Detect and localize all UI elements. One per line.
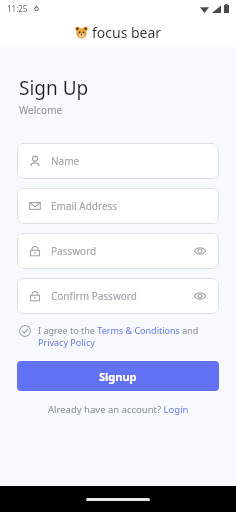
- staticText: Password: [51, 244, 97, 258]
- staticText: Signup: [99, 369, 137, 384]
- staticText: 11:25: [7, 3, 28, 14]
- staticText: Already have an account? Login: [48, 403, 189, 416]
- button[interactable]: Name: [17, 143, 219, 179]
- staticText: Email Address: [51, 199, 118, 213]
- button[interactable]: Confirm Password: [17, 278, 219, 314]
- button[interactable]: Already have an account? Login: [48, 403, 189, 416]
- button[interactable]: Signup: [17, 361, 219, 391]
- staticText: Confirm Password: [51, 289, 137, 303]
- button[interactable]: Agree to terms: [19, 324, 217, 349]
- button[interactable]: Show password: [193, 289, 207, 303]
- other: Agree to terms: [19, 325, 31, 337]
- staticText: Sign Up: [19, 75, 89, 101]
- button[interactable]: Show password: [193, 244, 207, 258]
- staticText: Welcome: [19, 103, 63, 117]
- staticText: focus bear: [92, 23, 162, 42]
- staticText: I agree to the Terms & Conditions and Pr…: [38, 324, 217, 349]
- staticText: Name: [51, 154, 80, 168]
- button[interactable]: Email Address: [17, 188, 219, 224]
- button[interactable]: Password: [17, 233, 219, 269]
